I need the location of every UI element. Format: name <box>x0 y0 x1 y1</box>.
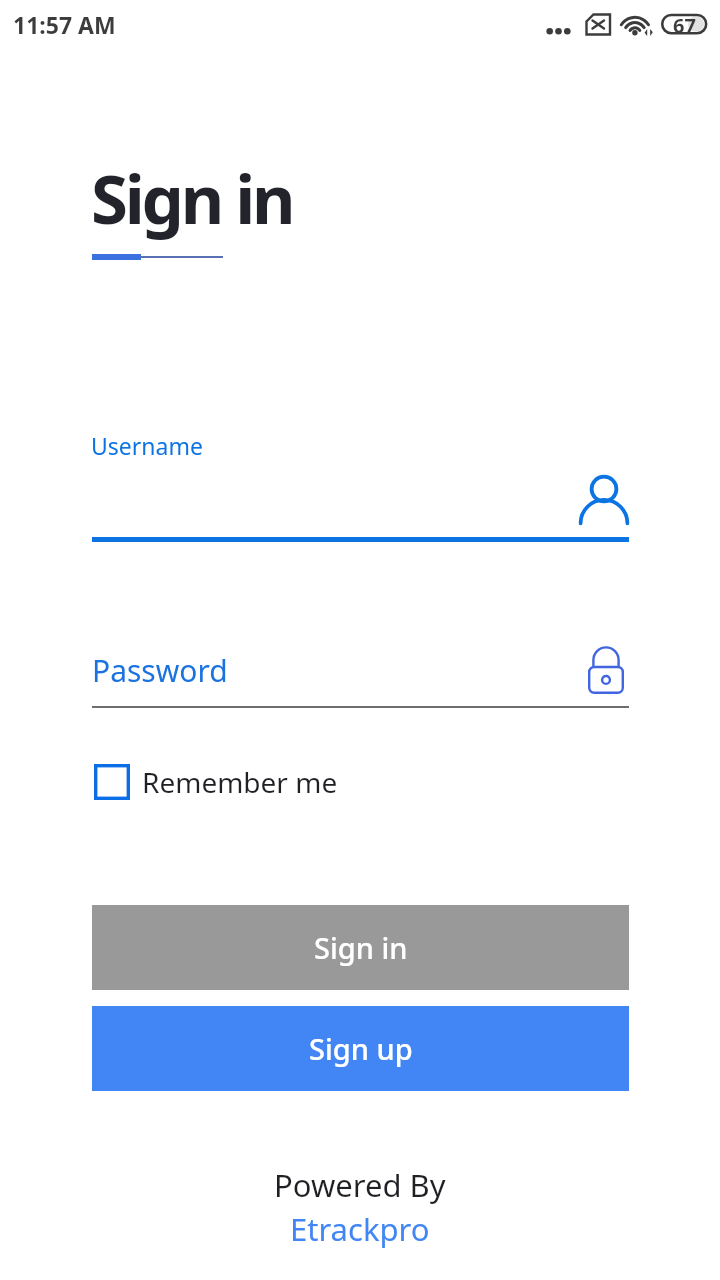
staticText: 67 <box>673 12 696 39</box>
other: Username <box>578 472 630 526</box>
button[interactable]: Sign up <box>92 1006 629 1091</box>
button[interactable]: Remember me <box>94 760 338 804</box>
staticText: Username <box>91 430 203 461</box>
staticText: Sign in <box>314 928 408 967</box>
other: Password <box>588 644 624 694</box>
staticText: Sign in <box>91 152 293 243</box>
staticText: 11:57 AM <box>13 9 116 40</box>
staticText: Powered By <box>274 1164 446 1206</box>
staticText: Remember me <box>142 763 338 801</box>
button[interactable]: Sign in <box>92 905 629 990</box>
staticText: Password <box>92 650 228 691</box>
staticText: Sign up <box>309 1029 413 1068</box>
button[interactable]: Etrackpro <box>290 1208 430 1250</box>
